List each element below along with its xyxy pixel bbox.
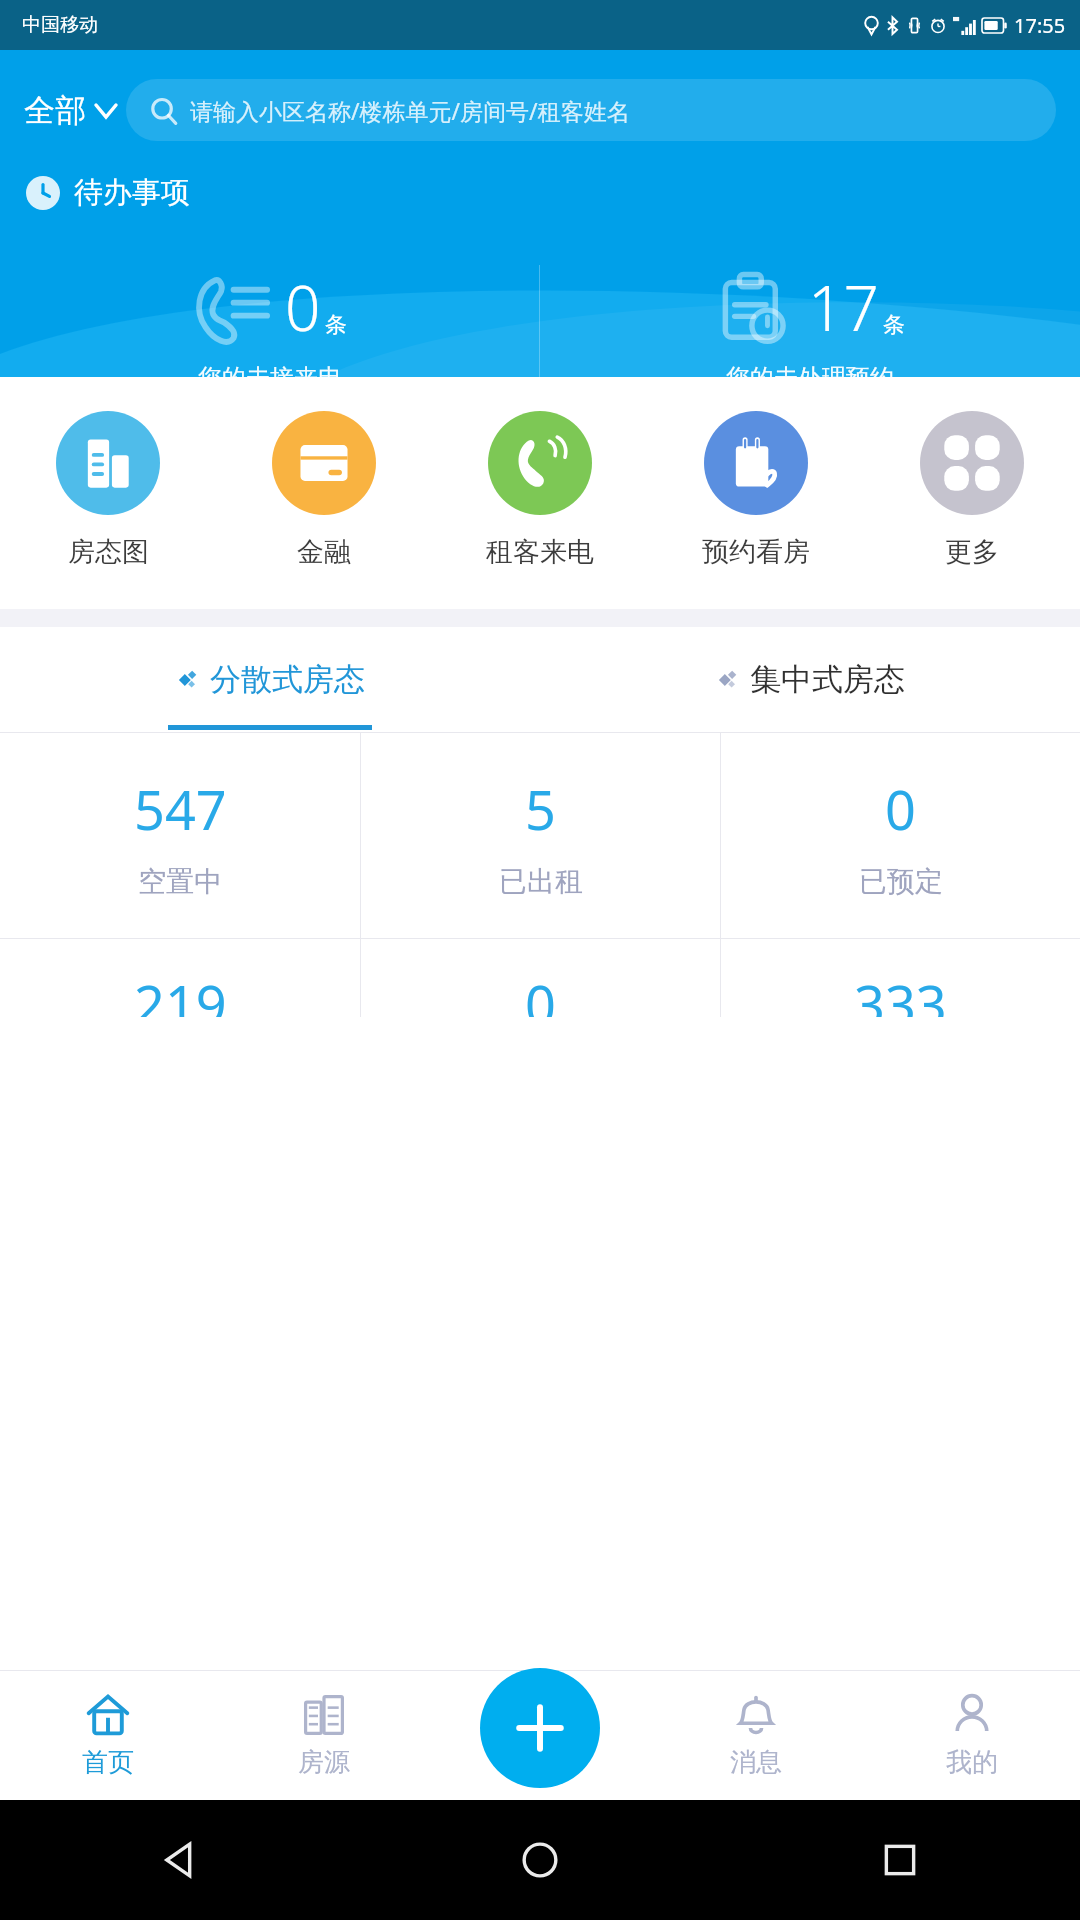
staticText: 待办事项 (74, 174, 190, 211)
button[interactable]: 金融 (216, 411, 432, 569)
button[interactable]: 0 (361, 939, 720, 1017)
button[interactable]: 房态图 (0, 411, 216, 569)
button[interactable]: Back (0, 1800, 360, 1920)
button[interactable]: 全部 (24, 91, 126, 130)
button[interactable]: Home (360, 1800, 720, 1920)
button[interactable]: Recent apps (720, 1800, 1080, 1920)
button[interactable]: 消息 (648, 1670, 864, 1800)
staticText: 分散式房态 (210, 660, 365, 699)
staticText: 租客来电 (486, 535, 594, 569)
staticText: 全部 (24, 91, 86, 130)
staticText: 预约看房 (702, 535, 810, 569)
button[interactable]: 房源 (216, 1670, 432, 1800)
staticText: 首页 (82, 1746, 134, 1779)
staticText: 0 (525, 967, 556, 1017)
staticText: 17 (808, 265, 879, 349)
button[interactable]: 首页 (0, 1670, 216, 1800)
staticText: 您的未处理预约 (726, 363, 894, 377)
button[interactable]: 0 (0, 265, 539, 377)
staticText: 219 (134, 967, 227, 1017)
staticText: 333 (854, 967, 947, 1017)
staticText: 5 (525, 772, 556, 846)
staticText: 0 (885, 772, 916, 846)
staticText: 中国移动 (22, 13, 98, 37)
staticText: 金融 (297, 535, 351, 569)
button[interactable]: 219 (0, 939, 360, 1017)
button[interactable]: 更多 (864, 411, 1080, 569)
staticText: 您的未接来电 (198, 363, 342, 377)
button[interactable]: 集中式房态 (540, 627, 1080, 732)
button[interactable]: 租客来电 (432, 411, 648, 569)
button[interactable]: 我的 (864, 1670, 1080, 1800)
staticText: 已出租 (499, 864, 583, 899)
staticText: 0 (285, 265, 321, 349)
button[interactable]: Add (480, 1668, 600, 1788)
staticText: 我的 (946, 1746, 998, 1779)
staticText: 消息 (730, 1746, 782, 1779)
staticText: 房态图 (68, 535, 149, 569)
button[interactable]: 17 (540, 265, 1080, 377)
staticText: 空置中 (138, 864, 222, 899)
button[interactable]: 请输入小区名称/楼栋单元/房间号/租客姓名 (126, 79, 1056, 141)
button[interactable]: 0 (721, 733, 1080, 938)
staticText: 请输入小区名称/楼栋单元/房间号/租客姓名 (190, 95, 630, 126)
button[interactable]: 分散式房态 (0, 627, 540, 732)
button[interactable]: 333 (721, 939, 1080, 1017)
staticText: 更多 (945, 535, 999, 569)
staticText: 547 (134, 772, 227, 846)
staticText: 集中式房态 (750, 660, 905, 699)
staticText: 房源 (298, 1746, 350, 1779)
button[interactable]: 预约看房 (648, 411, 864, 569)
staticText: 条 (325, 311, 347, 339)
staticText: 条 (883, 311, 905, 339)
staticText: 17:55 (1014, 12, 1066, 39)
button[interactable]: 547 (0, 733, 360, 938)
button[interactable]: 5 (361, 733, 720, 938)
staticText: 已预定 (859, 864, 943, 899)
